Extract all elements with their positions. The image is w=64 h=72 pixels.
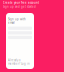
staticText: Create your free account	[3, 1, 39, 4]
staticText: Sign up with email	[8, 17, 26, 25]
staticText: Sign up and get started	[3, 5, 36, 8]
staticText: Already a member? Log in	[8, 58, 30, 65]
